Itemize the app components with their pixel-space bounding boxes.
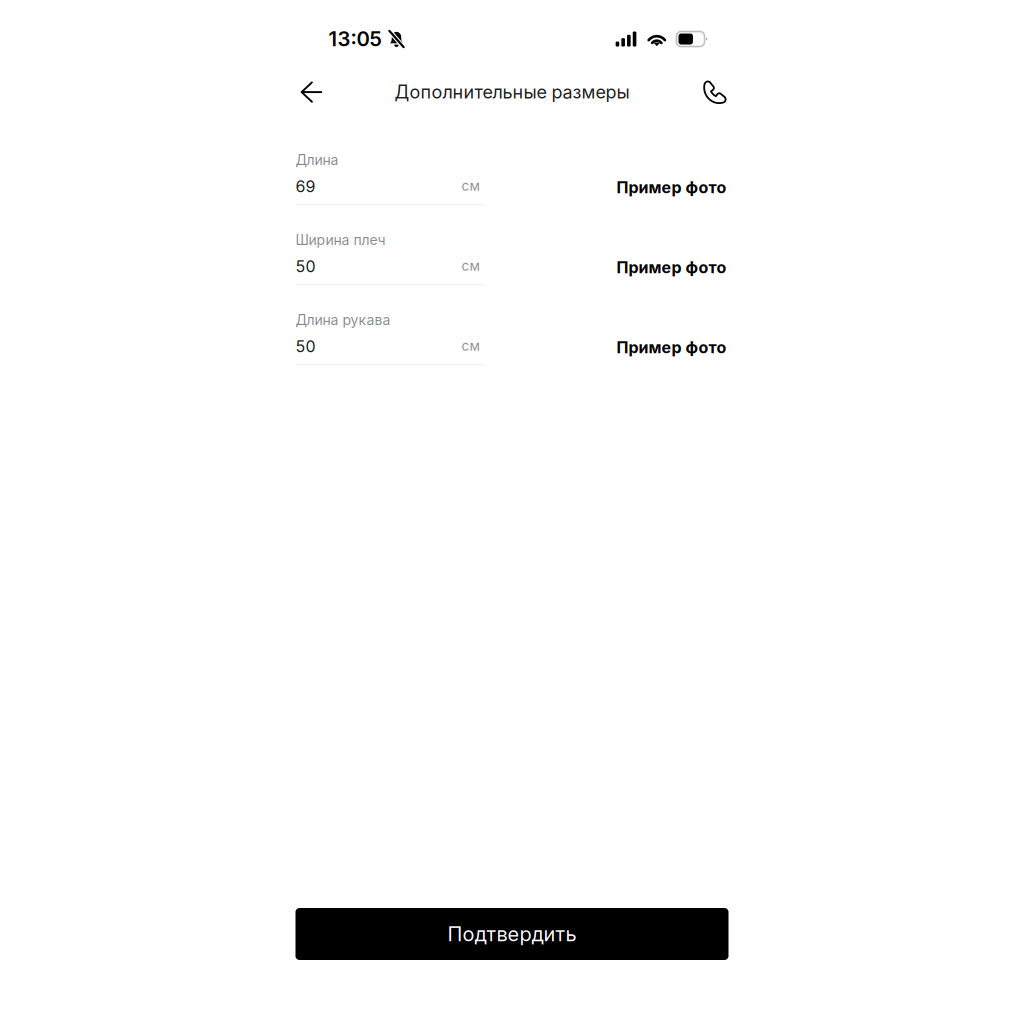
staticText: 69 xyxy=(295,177,315,196)
staticText: Пример фото xyxy=(616,258,726,277)
staticText: Пример фото xyxy=(616,178,726,197)
staticText: 13:05 xyxy=(328,27,381,51)
staticText: Длина рукава xyxy=(295,311,390,328)
staticText: Ширина плеч xyxy=(295,231,385,248)
button[interactable]: Длина рукава xyxy=(295,313,483,365)
button[interactable]: Подтвердить xyxy=(295,908,728,960)
staticText: Дополнительные размеры xyxy=(394,81,629,103)
staticText: см xyxy=(461,337,479,354)
staticText: Пример фото xyxy=(616,338,726,357)
button[interactable]: Пример фото xyxy=(616,153,728,210)
button[interactable]: Длина xyxy=(295,153,483,205)
staticText: см xyxy=(461,177,479,194)
button[interactable]: Назад xyxy=(293,77,326,106)
button[interactable]: Ширина плеч xyxy=(295,233,483,285)
staticText: 50 xyxy=(295,337,315,356)
staticText: Длина xyxy=(295,151,338,168)
staticText: см xyxy=(461,257,479,274)
button[interactable]: Пример фото xyxy=(616,233,728,290)
button[interactable]: Пример фото xyxy=(616,313,728,370)
staticText: 50 xyxy=(295,257,315,276)
staticText: Подтвердить xyxy=(447,922,576,946)
button[interactable]: Позвонить xyxy=(700,76,730,107)
